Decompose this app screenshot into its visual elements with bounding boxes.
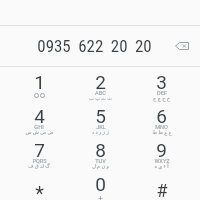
staticText: MNO	[155, 124, 168, 131]
staticText: 5	[95, 105, 106, 127]
staticText: 7	[34, 139, 45, 161]
staticText: 4	[34, 105, 45, 127]
staticText: و ن م ل	[92, 163, 109, 170]
staticText: #	[156, 180, 168, 200]
staticText: PQRS	[32, 158, 47, 165]
staticText: ض ص ش س	[25, 129, 54, 136]
staticText: غ ع ظ ط	[152, 129, 172, 136]
button[interactable]: 2	[70, 67, 131, 101]
staticText: خ ح چ ج	[153, 95, 170, 102]
staticText: آ ء ی ه	[154, 163, 169, 170]
button[interactable]: #	[131, 169, 192, 200]
staticText: 0	[95, 173, 106, 195]
button[interactable]: 5	[70, 101, 131, 135]
staticText: *	[35, 182, 44, 200]
button[interactable]: 8	[70, 135, 131, 169]
staticText: 8	[95, 139, 106, 161]
button[interactable]: 3	[131, 67, 192, 101]
button[interactable]: 1	[8, 67, 70, 101]
staticText: TUV	[95, 158, 106, 165]
staticText: DEF	[157, 90, 167, 97]
staticText: 0935 622 20 20	[37, 36, 152, 56]
staticText: گ ك ق ف	[28, 163, 50, 170]
staticText: 9	[156, 139, 167, 161]
button[interactable]: 9	[131, 135, 192, 169]
button[interactable]: 7	[8, 135, 70, 169]
button[interactable]: Backspace	[167, 31, 197, 61]
button[interactable]: 0	[70, 169, 131, 200]
staticText: 3	[156, 71, 167, 93]
staticText: JKL	[96, 124, 106, 131]
staticText: 6	[156, 105, 167, 127]
staticText: WXYZ	[154, 158, 170, 165]
staticText: ث ت پ ب	[89, 95, 112, 102]
button[interactable]: 6	[131, 101, 192, 135]
staticText: 2	[95, 71, 106, 93]
staticText: GHI	[34, 124, 44, 131]
staticText: 1	[34, 71, 45, 93]
button[interactable]: 4	[8, 101, 70, 135]
staticText: ژ ز ر ذ د	[92, 129, 109, 136]
staticText: +	[98, 194, 103, 200]
staticText: ABC	[95, 90, 106, 97]
button[interactable]: *	[8, 169, 70, 200]
